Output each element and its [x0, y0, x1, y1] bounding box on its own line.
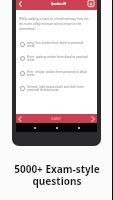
button[interactable]: Firm, circular strokes from proximal to … — [16, 66, 97, 81]
button[interactable]: Back — [31, 124, 38, 131]
staticText: Long, firm strokes from distal to proxim… — [27, 41, 84, 48]
staticText: SUBMIT — [51, 117, 61, 121]
staticText: Smooth, light strokes back and forth fro… — [27, 85, 84, 92]
button[interactable]: SUBMIT — [46, 115, 66, 123]
button[interactable]: Long, firm strokes from distal to proxim… — [16, 37, 97, 52]
button[interactable]: Flag question — [85, 0, 97, 10]
staticText: 5000+ Exam-style questions — [14, 162, 100, 188]
staticText: Short, patting strokes from distal to pr… — [27, 55, 88, 62]
button[interactable]: Navigate up — [16, 0, 25, 10]
button[interactable]: Previous question — [16, 114, 24, 123]
staticText: Question 08 — [51, 2, 66, 6]
staticText: Whilst walking a client on a hard level … — [19, 17, 92, 30]
button[interactable]: Next question — [89, 114, 97, 123]
button[interactable]: Recent apps — [75, 124, 82, 131]
staticText: Firm, circular strokes from proximal to … — [27, 70, 87, 77]
button[interactable]: Smooth, light strokes back and forth fro… — [16, 81, 97, 96]
button[interactable]: Short, patting strokes from distal to pr… — [16, 51, 97, 66]
button[interactable]: Home — [53, 124, 60, 131]
